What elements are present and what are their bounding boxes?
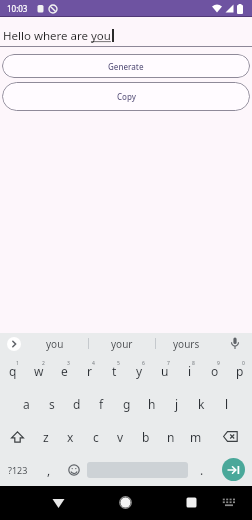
- staticText: Hello where are you: [3, 28, 111, 43]
- staticText: your: [111, 337, 133, 351]
- button[interactable]: x: [58, 420, 83, 453]
- staticText: r: [87, 363, 92, 379]
- button[interactable]: g: [114, 388, 139, 420]
- button[interactable]: ,: [36, 453, 61, 486]
- button[interactable]: [87, 453, 188, 486]
- staticText: 0: [242, 360, 245, 367]
- staticText: 8: [192, 360, 195, 367]
- staticText: 2: [42, 360, 45, 367]
- staticText: i: [188, 363, 192, 379]
- button[interactable]: [0, 420, 34, 453]
- staticText: 10:03: [7, 3, 28, 14]
- staticText: 6: [142, 360, 145, 367]
- staticText: d: [73, 396, 81, 412]
- button[interactable]: [7, 337, 21, 351]
- button[interactable]: [119, 496, 132, 509]
- staticText: k: [198, 396, 205, 412]
- staticText: 3: [67, 360, 70, 367]
- button[interactable]: r: [77, 354, 102, 388]
- staticText: z: [43, 429, 49, 445]
- button[interactable]: q: [0, 354, 26, 388]
- button[interactable]: Copy: [2, 82, 250, 111]
- button[interactable]: f: [89, 388, 114, 420]
- staticText: q: [9, 363, 17, 379]
- staticText: .: [200, 462, 204, 478]
- button[interactable]: s: [39, 388, 64, 420]
- staticText: yours: [173, 337, 200, 351]
- button[interactable]: u: [152, 354, 177, 388]
- staticText: p: [236, 363, 244, 379]
- staticText: ,: [47, 462, 51, 478]
- button[interactable]: [52, 499, 65, 508]
- button[interactable]: your: [89, 333, 155, 354]
- button[interactable]: n: [158, 420, 183, 453]
- button[interactable]: o: [202, 354, 227, 388]
- button[interactable]: Generate: [2, 54, 250, 78]
- button[interactable]: [222, 498, 236, 508]
- staticText: f: [99, 396, 104, 412]
- button[interactable]: c: [83, 420, 108, 453]
- button[interactable]: [217, 333, 252, 354]
- staticText: 4: [92, 360, 95, 367]
- button[interactable]: k: [189, 388, 214, 420]
- staticText: 5: [117, 360, 120, 367]
- button[interactable]: d: [64, 388, 89, 420]
- staticText: 7: [167, 360, 170, 367]
- staticText: m: [190, 429, 202, 445]
- button[interactable]: h: [139, 388, 164, 420]
- staticText: Generate: [108, 61, 144, 72]
- staticText: n: [167, 429, 175, 445]
- staticText: c: [93, 429, 99, 445]
- staticText: ?123: [8, 464, 28, 476]
- staticText: 1: [16, 360, 19, 367]
- staticText: u: [161, 363, 169, 379]
- staticText: x: [67, 429, 74, 445]
- staticText: y: [136, 363, 143, 379]
- staticText: b: [142, 429, 150, 445]
- button[interactable]: y: [127, 354, 152, 388]
- staticText: v: [117, 429, 124, 445]
- staticText: l: [225, 396, 229, 412]
- button[interactable]: v: [108, 420, 133, 453]
- button[interactable]: a: [13, 388, 39, 420]
- button[interactable]: you: [21, 333, 88, 354]
- staticText: e: [61, 363, 68, 379]
- staticText: 9: [217, 360, 220, 367]
- button[interactable]: w: [26, 354, 52, 388]
- button[interactable]: ?123: [0, 453, 36, 486]
- staticText: j: [175, 396, 179, 412]
- button[interactable]: [186, 497, 197, 508]
- staticText: a: [23, 396, 30, 412]
- button[interactable]: [61, 453, 86, 486]
- button[interactable]: t: [102, 354, 127, 388]
- button[interactable]: .: [189, 453, 214, 486]
- button[interactable]: yours: [156, 333, 217, 354]
- staticText: Copy: [117, 91, 136, 102]
- button[interactable]: m: [183, 420, 208, 453]
- button[interactable]: [208, 420, 252, 453]
- staticText: t: [112, 363, 117, 379]
- staticText: s: [49, 396, 55, 412]
- staticText: h: [148, 396, 156, 412]
- button[interactable]: b: [133, 420, 158, 453]
- button[interactable]: j: [164, 388, 189, 420]
- button[interactable]: l: [214, 388, 239, 420]
- button[interactable]: z: [34, 420, 58, 453]
- staticText: o: [211, 363, 219, 379]
- staticText: g: [123, 396, 131, 412]
- button[interactable]: e: [52, 354, 77, 388]
- staticText: you: [46, 337, 64, 351]
- button[interactable]: [214, 453, 252, 486]
- button[interactable]: i: [177, 354, 202, 388]
- staticText: w: [34, 363, 44, 379]
- button[interactable]: p: [227, 354, 252, 388]
